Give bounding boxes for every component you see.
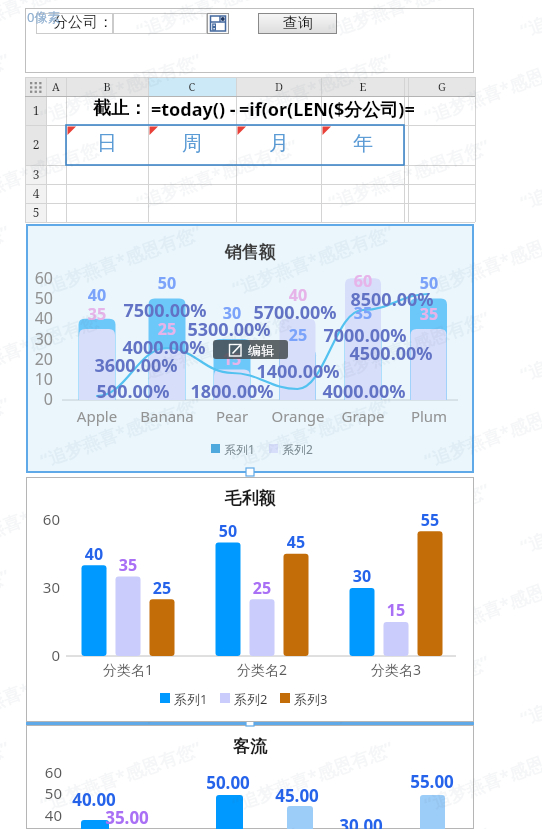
- staticText: 编辑: [248, 342, 274, 358]
- staticText: 月: [244, 131, 314, 156]
- staticText: 35: [103, 554, 153, 576]
- staticText: “追梦燕喜*感恩有您”: [421, 564, 542, 645]
- staticText: “追梦燕喜*感恩有您”: [229, 392, 397, 473]
- staticText: 销售额: [150, 242, 350, 263]
- staticText: 50: [203, 520, 253, 542]
- button[interactable]: [26, 224, 474, 473]
- button[interactable]: 查询: [258, 13, 337, 34]
- staticText: 4500.00%: [311, 341, 471, 366]
- staticText: 60: [12, 762, 62, 782]
- staticText: 1800.00%: [152, 379, 312, 404]
- staticText: 7500.00%: [85, 298, 245, 323]
- staticText: 8500.00%: [312, 287, 472, 312]
- staticText: 系列2: [282, 441, 313, 455]
- staticText: 60: [333, 270, 393, 292]
- staticText: “追梦燕喜*感恩有您”: [133, 478, 301, 559]
- staticText: D: [249, 79, 309, 94]
- staticText: 10: [3, 368, 53, 390]
- staticText: Grape: [318, 406, 408, 426]
- staticText: “追梦燕喜*感恩有您”: [325, 478, 493, 559]
- staticText: “追梦燕喜*感恩有您”: [37, 564, 205, 645]
- staticText: “追梦燕喜*感恩有您”: [37, 220, 205, 301]
- staticText: 分公司：: [53, 13, 133, 32]
- staticText: “追梦燕喜*感恩有您”: [325, 650, 493, 731]
- staticText: 30.00: [306, 814, 416, 829]
- staticText: “追梦燕喜*感恩有您”: [325, 0, 493, 43]
- staticText: 5: [16, 204, 56, 220]
- staticText: 45: [271, 531, 321, 553]
- staticText: “追梦燕喜*感恩有您”: [133, 306, 301, 387]
- staticText: 35.00: [72, 806, 182, 829]
- staticText: G: [412, 79, 472, 94]
- staticText: B: [77, 79, 137, 94]
- staticText: 7000.00%: [285, 323, 445, 348]
- staticText: 500.00%: [53, 379, 213, 404]
- staticText: 25: [237, 577, 287, 599]
- staticText: “追梦燕喜*感恩有您”: [325, 134, 493, 215]
- staticText: 40: [69, 543, 119, 565]
- staticText: 35: [399, 303, 459, 325]
- staticText: “追梦燕喜*感恩有您”: [133, 0, 301, 43]
- staticText: =today() -: [151, 97, 271, 122]
- staticText: 0像素: [27, 8, 61, 26]
- staticText: 截止：: [27, 97, 147, 120]
- staticText: 15: [371, 599, 421, 621]
- staticText: “追梦燕喜*感恩有您”: [0, 306, 109, 387]
- staticText: 分类名3: [346, 660, 446, 679]
- staticText: “追梦燕喜*感恩有您”: [421, 736, 542, 817]
- staticText: “追梦燕喜*感恩有您”: [229, 564, 397, 645]
- staticText: 系列2: [234, 690, 268, 706]
- staticText: E: [333, 79, 393, 94]
- staticText: “追梦燕喜*感恩有您”: [37, 48, 205, 129]
- staticText: A: [26, 79, 86, 94]
- staticText: 系列1: [224, 441, 255, 455]
- staticText: “追梦燕喜*感恩有您”: [421, 392, 542, 473]
- staticText: 40.00: [39, 788, 149, 811]
- staticText: “追梦燕喜*感恩有您”: [0, 650, 109, 731]
- staticText: “追梦燕喜*感恩有您”: [37, 736, 205, 817]
- staticText: C: [162, 79, 222, 94]
- staticText: 系列1: [174, 690, 208, 706]
- staticText: 1: [16, 102, 56, 118]
- staticText: 40: [268, 284, 328, 306]
- button[interactable]: 选择分公司: [207, 13, 229, 34]
- staticText: 5700.00%: [215, 300, 375, 325]
- staticText: “追梦燕喜*感恩有您”: [0, 822, 109, 829]
- button[interactable]: 编辑: [213, 340, 288, 359]
- staticText: 40: [12, 805, 62, 825]
- staticText: “追梦燕喜*感恩有您”: [229, 48, 397, 129]
- staticText: 60: [10, 509, 60, 529]
- staticText: 4000.00%: [84, 335, 244, 360]
- staticText: 毛利额: [150, 488, 350, 509]
- staticText: “追梦燕喜*感恩有您”: [421, 48, 542, 129]
- staticText: 4000.00%: [284, 379, 444, 404]
- staticText: 55.00: [377, 770, 487, 793]
- staticText: 周: [157, 131, 227, 156]
- staticText: Apple: [52, 406, 142, 426]
- staticText: “追梦燕喜*感恩有您”: [133, 650, 301, 731]
- staticText: “追梦燕喜*感恩有您”: [37, 392, 205, 473]
- staticText: 4: [16, 185, 56, 201]
- staticText: Orange: [253, 406, 343, 426]
- staticText: 30: [10, 577, 60, 597]
- staticText: 30: [3, 328, 53, 350]
- staticText: 查询: [283, 14, 313, 33]
- staticText: 30: [337, 565, 387, 587]
- staticText: 日: [72, 131, 142, 156]
- staticText: “追梦燕喜*感恩有您”: [421, 220, 542, 301]
- staticText: 35: [67, 303, 127, 325]
- staticText: 5300.00%: [149, 317, 309, 342]
- staticText: 35: [333, 302, 393, 324]
- staticText: 25: [137, 318, 197, 340]
- staticText: 25: [137, 577, 187, 599]
- staticText: Plum: [384, 406, 474, 426]
- staticText: “追梦燕喜*感恩有您”: [229, 736, 397, 817]
- staticText: 分类名1: [78, 660, 178, 679]
- staticText: 45.00: [242, 784, 352, 807]
